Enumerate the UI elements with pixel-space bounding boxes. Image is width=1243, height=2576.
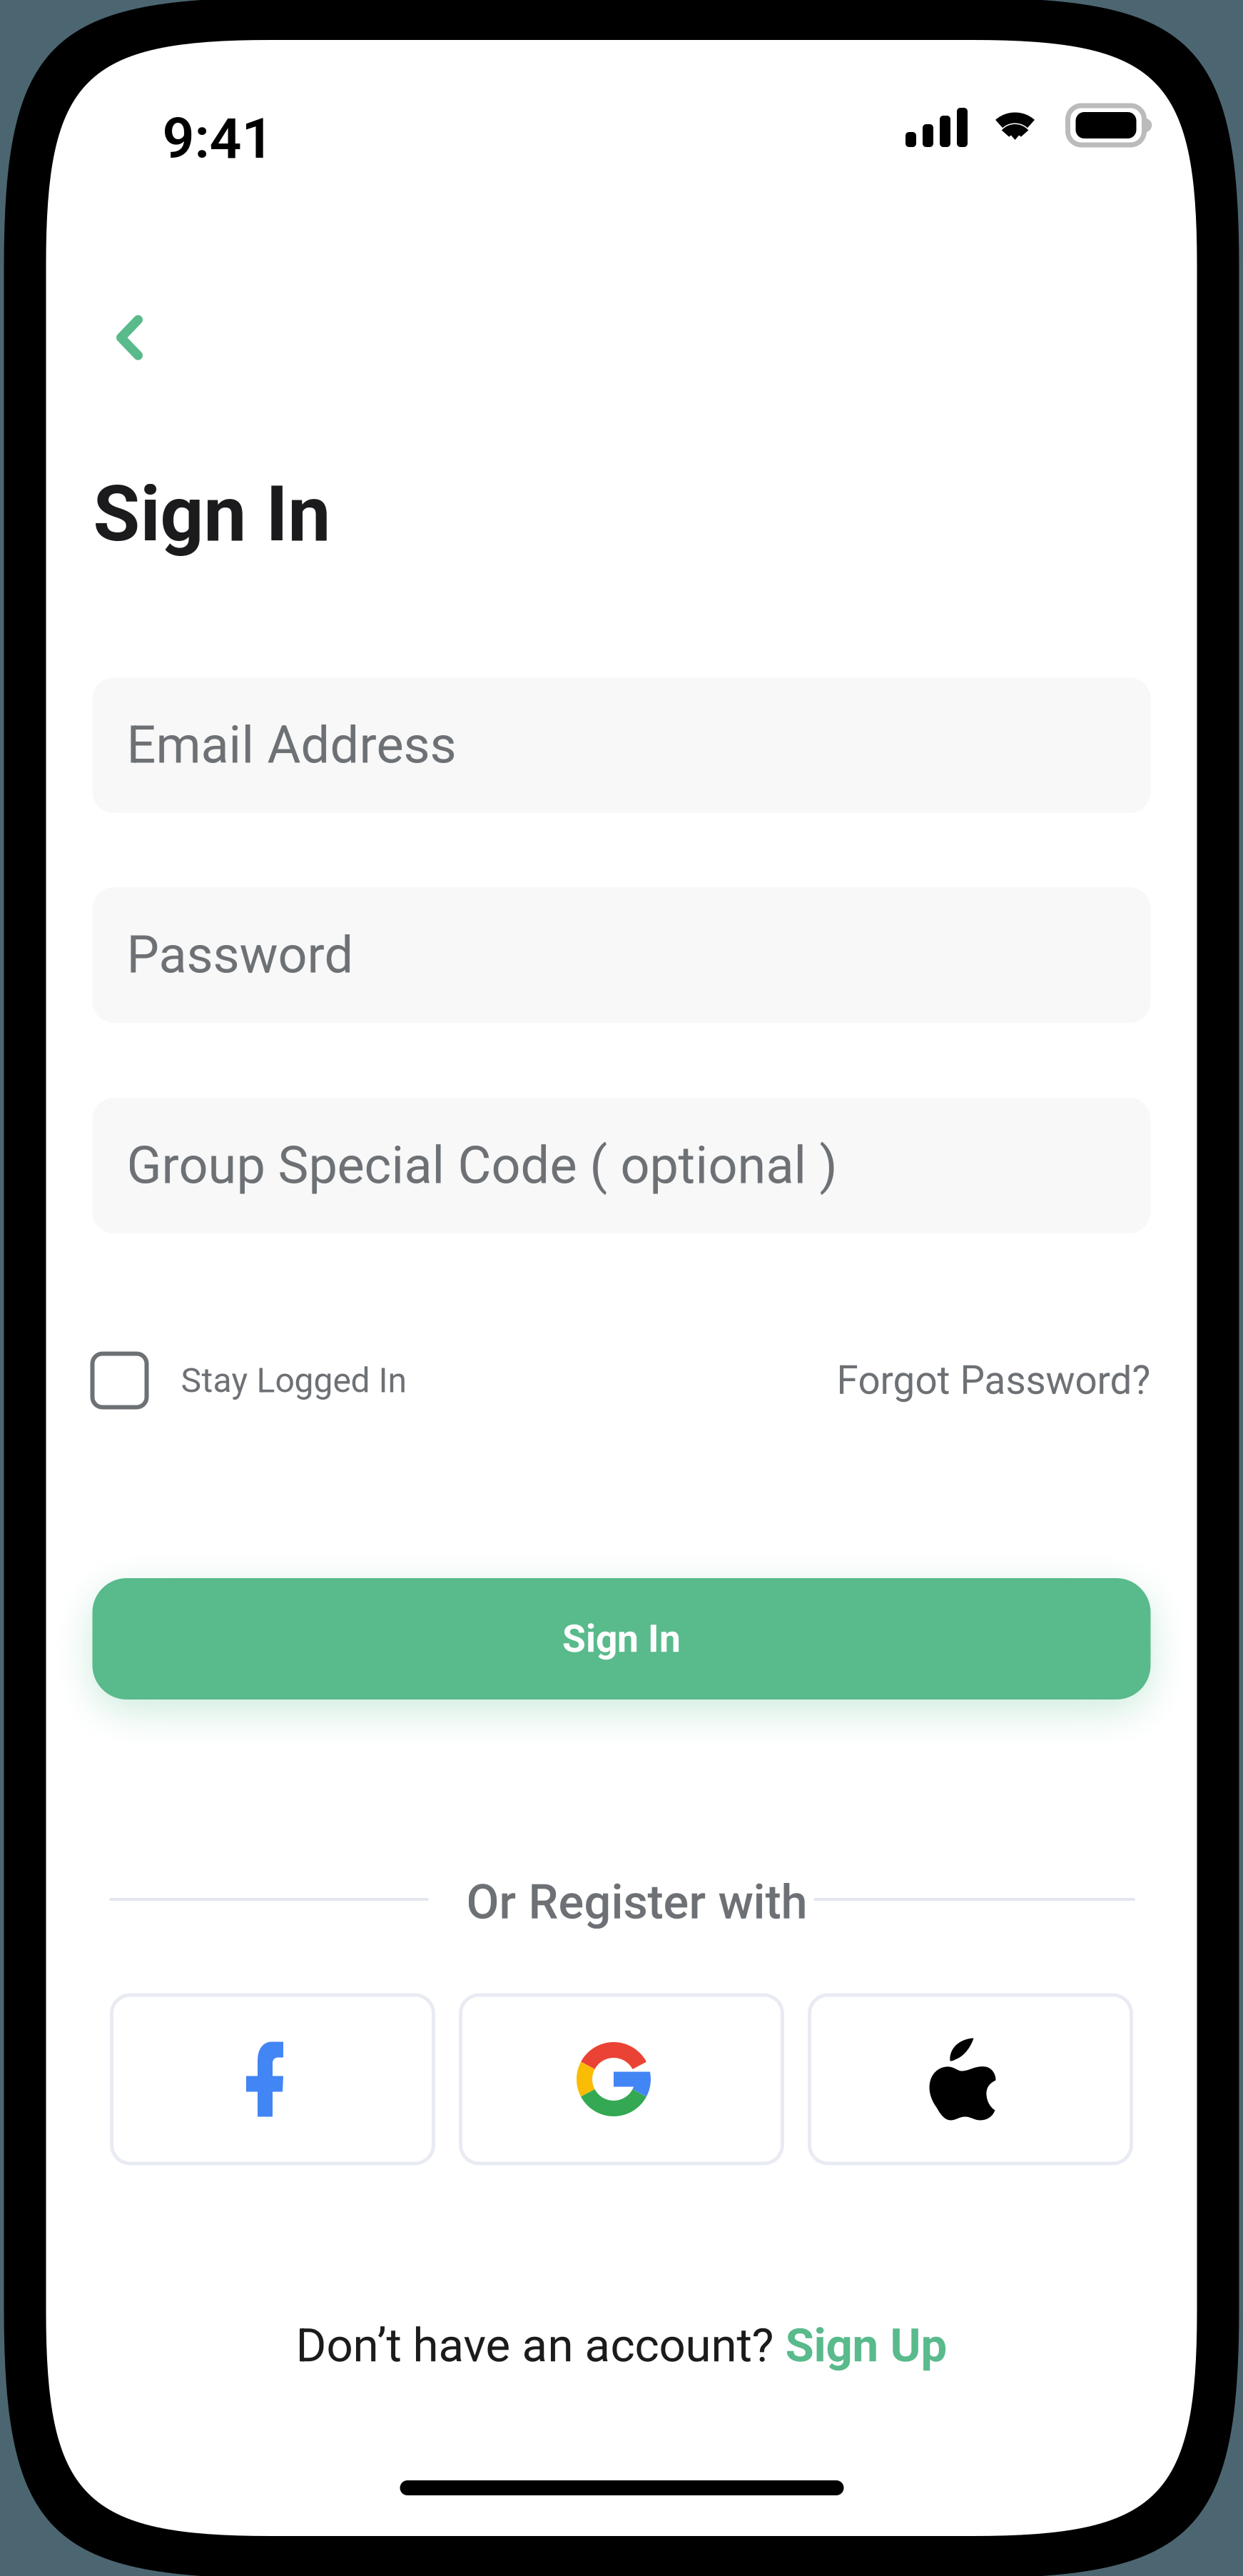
- button[interactable]: Sign in with Apple: [810, 1995, 1131, 2163]
- button[interactable]: Email Address: [92, 677, 1151, 813]
- staticText: 9:41: [162, 106, 274, 171]
- button[interactable]: Group Special Code ( optional ): [92, 1098, 1151, 1233]
- staticText: Forgot Password?: [837, 1358, 1151, 1403]
- staticText: Sign In: [93, 470, 331, 559]
- button[interactable]: Forgot Password?: [837, 1341, 1151, 1420]
- staticText: Don’t have an account?: [296, 2318, 785, 2373]
- button[interactable]: Don’t have an account?: [46, 2306, 1197, 2385]
- staticText: Sign In: [562, 1617, 681, 1661]
- staticText: Email Address: [127, 715, 456, 775]
- button[interactable]: Password: [92, 887, 1151, 1023]
- staticText: Password: [127, 925, 354, 985]
- staticText: Sign Up: [785, 2318, 947, 2373]
- button[interactable]: Sign in with Google: [461, 1995, 782, 2163]
- button[interactable]: Back: [86, 296, 173, 379]
- button[interactable]: Stay Logged In: [92, 1341, 407, 1420]
- button[interactable]: Sign In: [92, 1578, 1151, 1699]
- staticText: Group Special Code ( optional ): [127, 1135, 837, 1196]
- staticText: Or Register with: [466, 1874, 807, 1930]
- button[interactable]: Sign in with Facebook: [112, 1995, 433, 2163]
- staticText: Stay Logged In: [181, 1360, 407, 1400]
